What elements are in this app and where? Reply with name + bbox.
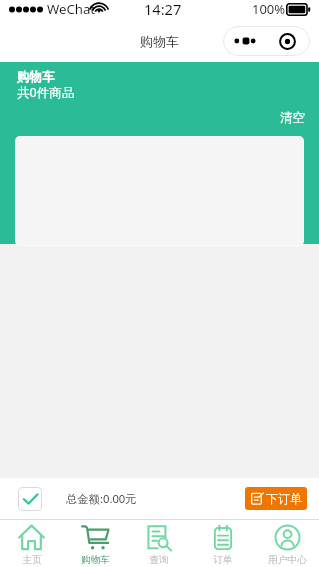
- staticText: WeChat: [47, 0, 96, 18]
- button[interactable]: 购物车: [63, 520, 127, 567]
- staticText: 共0件商品: [17, 84, 75, 101]
- staticText: 清空: [280, 110, 305, 126]
- button[interactable]: Select all: [18, 487, 42, 511]
- staticText: 购物车: [81, 554, 110, 566]
- button[interactable]: 用户中心: [255, 520, 319, 567]
- button[interactable]: 查询: [127, 520, 191, 567]
- button[interactable]: 主页: [0, 520, 63, 567]
- staticText: 购物车: [17, 69, 55, 85]
- staticText: 总金额:0.00元: [66, 491, 137, 506]
- staticText: 主页: [22, 554, 42, 566]
- button[interactable]: 订单: [191, 520, 255, 567]
- staticText: 查询: [149, 554, 169, 566]
- staticText: 用户中心: [268, 554, 307, 566]
- staticText: 100%: [252, 0, 286, 18]
- staticText: 14:27: [144, 0, 182, 19]
- button[interactable]: 下订单: [245, 487, 307, 510]
- staticText: 下订单: [266, 491, 302, 506]
- staticText: 购物车: [140, 33, 179, 49]
- staticText: 订单: [213, 554, 233, 566]
- button[interactable]: More: [223, 26, 266, 56]
- button[interactable]: Close: [266, 26, 309, 56]
- button[interactable]: 清空: [272, 106, 316, 129]
